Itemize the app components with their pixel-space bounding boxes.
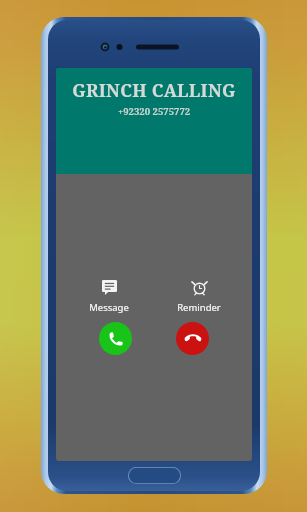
staticText: +92320 2575772: [56, 105, 252, 118]
button[interactable]: Message: [72, 278, 146, 316]
button[interactable]: Decline call: [176, 322, 209, 355]
button[interactable]: Answer call: [99, 322, 132, 355]
staticText: Reminder: [177, 301, 221, 314]
staticText: Message: [89, 301, 129, 314]
staticText: GRINCH CALLING: [56, 78, 252, 102]
button[interactable]: Home: [128, 467, 181, 484]
button[interactable]: Reminder: [162, 278, 236, 316]
